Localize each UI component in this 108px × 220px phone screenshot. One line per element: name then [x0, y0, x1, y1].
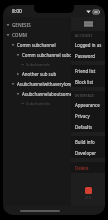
staticText: Appearance	[75, 102, 100, 108]
button[interactable]: ACCOUNT	[71, 31, 105, 39]
staticText: Asubchannelaboutsomethingelse...	[22, 91, 95, 97]
staticText: 8:00	[12, 8, 22, 15]
staticText: Comm subchannel	[17, 42, 56, 48]
staticText: ACCOUNT	[75, 33, 93, 38]
button[interactable]: Another sub sub	[3, 69, 105, 79]
button[interactable]: Asubchannelwithaverylongname	[3, 79, 105, 89]
staticText: Another sub sub	[22, 71, 57, 77]
button[interactable]: COMM	[3, 30, 105, 40]
staticText: Password	[75, 53, 95, 59]
button[interactable]: Developer	[71, 147, 105, 158]
staticText: Comm subchannel subchannel	[22, 52, 86, 58]
staticText: Defaults	[75, 124, 93, 130]
staticText: Build info	[75, 139, 95, 145]
staticText: Subchannels	[26, 62, 50, 67]
button[interactable]: Block list	[71, 76, 105, 87]
button[interactable]: Defaults	[71, 121, 105, 132]
button[interactable]: Comm subchannel	[3, 40, 105, 50]
staticText: Friend list	[75, 68, 96, 74]
staticText: Subchannels	[26, 101, 50, 106]
button[interactable]: Appearance	[71, 99, 105, 110]
button[interactable]: Subchannels	[3, 60, 105, 69]
button[interactable]: Asubchannelaboutsomethingelse...	[3, 89, 105, 99]
staticText: Block list	[75, 79, 94, 85]
button[interactable]: Menu	[71, 17, 105, 31]
staticText: Delete account	[75, 165, 103, 171]
button[interactable]: Logged in as	[71, 39, 105, 50]
staticText: v1.0	[85, 196, 92, 200]
staticText: GENESIS	[12, 22, 31, 28]
staticText: Developer	[75, 150, 97, 156]
staticText: Asubchannelwithaverylongname	[17, 81, 85, 87]
button[interactable]: Delete account	[71, 162, 105, 173]
button[interactable]: GENESIS	[3, 20, 105, 30]
button[interactable]: App info	[71, 187, 105, 206]
staticText: COMM	[12, 32, 27, 38]
button[interactable]: Privacy	[71, 110, 105, 121]
staticText: INTERFACE	[75, 93, 95, 98]
button[interactable]: Subchannels	[3, 99, 105, 108]
button[interactable]: Build info	[71, 136, 105, 147]
staticText: Logged in as	[75, 42, 102, 48]
button[interactable]: Friend list	[71, 65, 105, 76]
button[interactable]: Comm subchannel subchannel	[3, 50, 105, 60]
button[interactable]: Password	[71, 50, 105, 61]
button[interactable]: INTERFACE	[71, 91, 105, 99]
staticText: Privacy	[75, 113, 90, 119]
